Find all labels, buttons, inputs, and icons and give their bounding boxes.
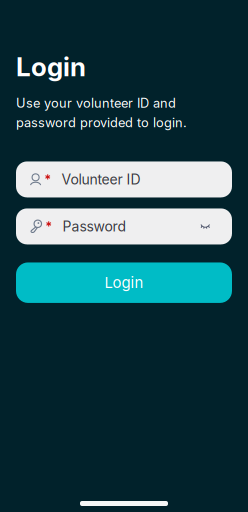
staticText: Use your volunteer ID and xyxy=(16,95,176,111)
button[interactable]: Volunteer ID xyxy=(16,161,232,197)
staticText: Password xyxy=(62,218,126,235)
staticText: Volunteer ID xyxy=(61,171,140,188)
button[interactable]: Password xyxy=(16,208,232,244)
staticText: Login xyxy=(104,274,143,292)
button[interactable]: Login xyxy=(16,262,232,303)
staticText: Login xyxy=(16,51,86,82)
staticText: password provided to login. xyxy=(16,115,187,130)
